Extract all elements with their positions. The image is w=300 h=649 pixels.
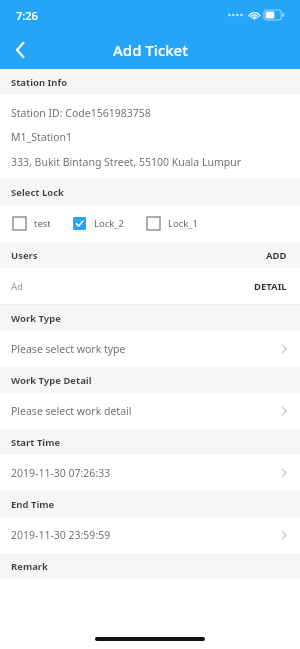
button[interactable]: test [11, 213, 53, 234]
staticText: Users [11, 249, 38, 262]
staticText: Lock_1 [168, 217, 199, 230]
staticText: End Time [11, 498, 55, 511]
staticText: Station ID: Code1561983758 [11, 106, 151, 120]
button[interactable]: DETAIL [252, 276, 289, 297]
staticText: Please select work detail [11, 404, 132, 418]
staticText: Please select work type [11, 342, 126, 356]
button[interactable]: Lock_1 [145, 213, 201, 234]
staticText: Start Time [11, 436, 61, 449]
staticText: ADD [266, 249, 287, 262]
staticText: Remark [11, 560, 48, 573]
staticText: 2019-11-30 23:59:59 [11, 528, 111, 542]
button[interactable]: 2019-11-30 23:59:59 [0, 517, 300, 553]
button[interactable]: ADD [264, 245, 289, 266]
staticText: Station Info [11, 76, 68, 89]
staticText: 7:26 [16, 8, 38, 23]
button[interactable]: 2019-11-30 07:26:33 [0, 455, 300, 491]
button[interactable]: Back [0, 30, 40, 69]
staticText: 333, Bukit Bintang Street, 55100 Kuala L… [11, 155, 242, 169]
staticText: Ad [11, 280, 23, 293]
button[interactable]: Please select work detail [0, 393, 300, 429]
staticText: Work Type Detail [11, 374, 92, 387]
staticText: DETAIL [254, 280, 287, 293]
staticText: M1_Station1 [11, 130, 72, 144]
button[interactable]: Lock_2 [71, 213, 127, 234]
button[interactable]: Please select work type [0, 331, 300, 367]
staticText: Select Lock [11, 186, 64, 199]
staticText: Lock_2 [94, 217, 125, 230]
staticText: 2019-11-30 07:26:33 [11, 466, 111, 480]
staticText: test [34, 217, 51, 230]
staticText: Add Ticket [113, 40, 188, 60]
staticText: Work Type [11, 312, 61, 325]
